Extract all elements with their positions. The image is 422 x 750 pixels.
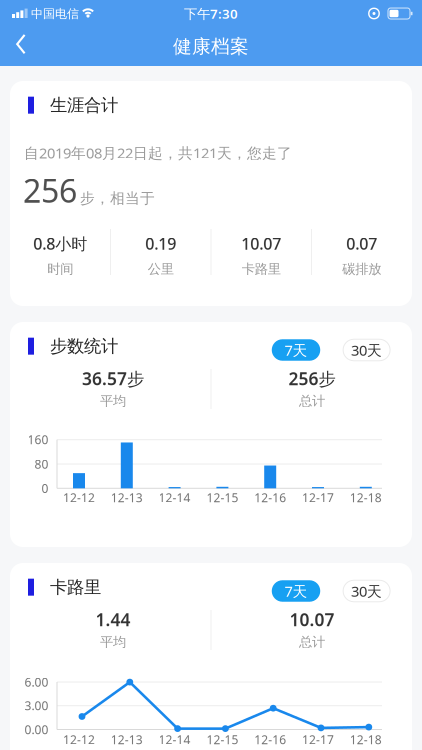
staticText: 自2019年08月22日起，共121天，您走了 [24, 143, 292, 162]
staticText: 步数统计 [50, 335, 118, 357]
staticText: 1.44 [95, 608, 130, 631]
staticText: 36.57步 [82, 367, 144, 390]
staticText: 3.00 [24, 698, 48, 714]
button[interactable]: 30天 [343, 339, 390, 361]
staticText: 12-13 [111, 489, 143, 505]
staticText: 7天 [284, 340, 307, 360]
staticText: 10.07 [241, 233, 281, 254]
staticText: 0 [41, 480, 48, 496]
staticText: 256 [23, 169, 77, 211]
staticText: 12-14 [159, 731, 191, 747]
staticText: 公里 [148, 261, 174, 277]
staticText: 30天 [351, 581, 382, 601]
staticText: 12-12 [63, 731, 95, 747]
staticText: 12-16 [254, 731, 286, 747]
staticText: 12-17 [302, 489, 334, 505]
staticText: 12-12 [63, 489, 95, 505]
staticText: 12-18 [350, 489, 382, 505]
staticText: 平均 [100, 393, 126, 409]
staticText: 总计 [299, 634, 325, 650]
staticText: 卡路里 [50, 576, 101, 598]
button[interactable]: 返回 [0, 0, 44, 66]
staticText: 健康档案 [173, 35, 249, 58]
button[interactable]: 7天 [272, 339, 320, 361]
staticText: 12-15 [206, 731, 238, 747]
staticText: 0.19 [145, 233, 176, 254]
staticText: 7天 [284, 581, 307, 601]
button[interactable]: 30天 [343, 580, 390, 602]
staticText: 0.00 [24, 721, 48, 737]
staticText: 下午7:30 [184, 5, 238, 22]
staticText: 中国电信 [31, 6, 79, 21]
staticText: 6.00 [24, 674, 48, 690]
staticText: 平均 [100, 634, 126, 650]
staticText: 卡路里 [242, 261, 281, 277]
staticText: 时间 [47, 261, 73, 277]
staticText: 10.07 [289, 608, 334, 631]
staticText: 160 [27, 432, 48, 448]
staticText: 12-16 [254, 489, 286, 505]
button[interactable]: 7天 [272, 580, 320, 602]
staticText: 0.8小时 [33, 233, 87, 254]
staticText: 12-15 [206, 489, 238, 505]
staticText: 256步 [288, 367, 335, 390]
staticText: 12-14 [159, 489, 191, 505]
staticText: 生涯合计 [50, 94, 118, 116]
staticText: 0.07 [346, 233, 377, 254]
staticText: 80 [34, 456, 48, 472]
staticText: 碳排放 [342, 261, 381, 277]
staticText: 30天 [351, 340, 382, 360]
staticText: 步，相当于 [80, 189, 155, 207]
staticText: 12-18 [350, 731, 382, 747]
staticText: 12-13 [111, 731, 143, 747]
staticText: 12-17 [302, 731, 334, 747]
staticText: 总计 [299, 393, 325, 409]
